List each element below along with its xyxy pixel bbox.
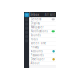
- button[interactable]: Workspace: [24, 13, 29, 17]
- button[interactable]: Developer: [29, 57, 56, 61]
- staticText: Screen Time: [31, 41, 47, 45]
- staticText: Edit: [50, 13, 55, 16]
- button[interactable]: Wallpaper: [29, 25, 56, 29]
- staticText: About: [31, 61, 40, 65]
- staticText: Sounds: [31, 33, 41, 37]
- button[interactable]: General: [29, 17, 56, 21]
- staticText: Privacy: [31, 45, 39, 49]
- button[interactable]: Notifications: [29, 29, 56, 33]
- staticText: Focus: [31, 37, 38, 41]
- staticText: Developer: [31, 57, 45, 61]
- button[interactable]: Privacy: [29, 45, 56, 49]
- staticText: Accounts: [31, 49, 43, 53]
- staticText: Inbox: [31, 13, 39, 16]
- staticText: Passwords: [31, 53, 44, 57]
- button[interactable]: Display: [29, 21, 56, 25]
- button[interactable]: Accounts: [29, 49, 56, 53]
- button[interactable]: Focus: [29, 37, 56, 41]
- staticText: All: [45, 13, 49, 16]
- staticText: Display: [31, 21, 40, 25]
- staticText: Notifications: [31, 29, 48, 33]
- button[interactable]: Sounds: [29, 33, 56, 37]
- staticText: General: [31, 17, 42, 21]
- button[interactable]: About: [29, 61, 56, 65]
- staticText: Wallpaper: [31, 25, 44, 29]
- button[interactable]: Screen Time: [29, 41, 56, 45]
- button[interactable]: Passwords: [29, 53, 56, 57]
